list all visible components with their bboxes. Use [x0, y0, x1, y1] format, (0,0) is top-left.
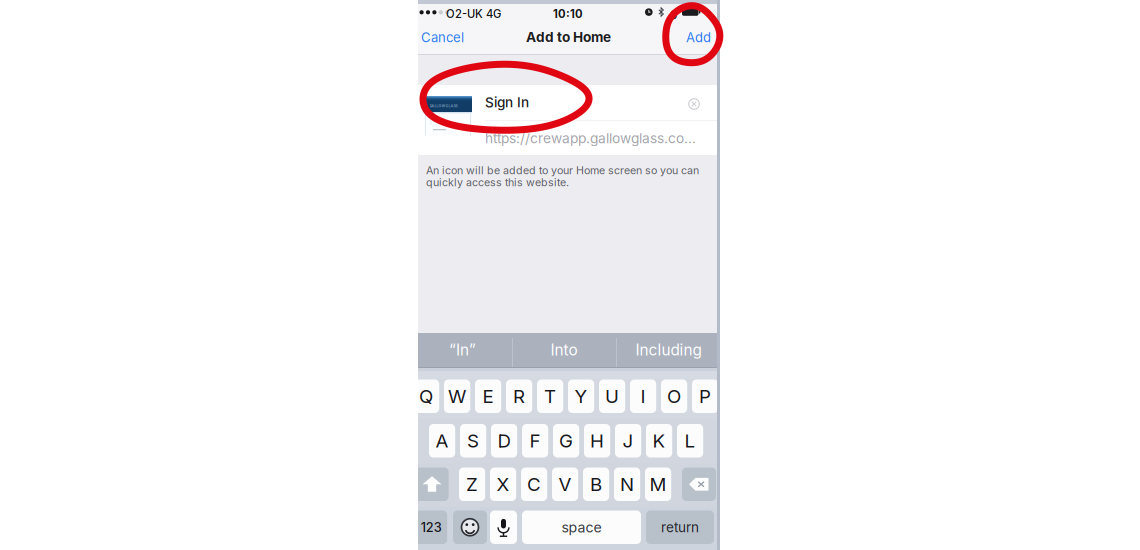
button[interactable]: Add — [669, 20, 720, 55]
staticText: Z — [466, 473, 478, 496]
button[interactable]: G — [553, 424, 579, 457]
button[interactable]: C — [521, 467, 547, 501]
button[interactable]: Into — [517, 333, 611, 367]
staticText: GALLOWGLASS — [429, 104, 457, 108]
staticText: Into — [550, 341, 577, 359]
staticText: “In” — [449, 341, 476, 359]
button[interactable]: Q — [413, 379, 439, 413]
button[interactable]: V — [552, 467, 578, 501]
staticText: G — [559, 429, 573, 452]
staticText: 10:10 — [553, 7, 583, 21]
staticText: C — [527, 473, 541, 496]
staticText: M — [650, 473, 667, 496]
staticText: J — [623, 429, 634, 452]
staticText: 123 — [421, 519, 442, 535]
button[interactable]: I — [630, 379, 656, 413]
staticText: L — [685, 429, 696, 452]
staticText: I — [641, 385, 646, 408]
staticText: Add — [686, 30, 711, 45]
button[interactable]: R — [506, 379, 532, 413]
button[interactable]: S — [460, 424, 486, 457]
staticText: space — [561, 519, 601, 536]
staticText: https://crewapp.gallowglass.co… — [485, 130, 696, 147]
staticText: Sign In — [485, 94, 529, 110]
staticText: D — [498, 429, 511, 452]
button[interactable]: space — [522, 510, 641, 544]
staticText: E — [483, 385, 494, 408]
button[interactable]: Emoji — [453, 510, 487, 544]
staticText: F — [530, 429, 541, 452]
staticText: 4G — [486, 7, 501, 21]
staticText: Including — [635, 341, 701, 359]
staticText: U — [605, 385, 619, 408]
button[interactable]: J — [615, 424, 641, 457]
staticText: A — [436, 429, 449, 452]
button[interactable]: “In” — [415, 333, 509, 367]
staticText: An icon will be added to your Home scree… — [426, 164, 699, 177]
button[interactable]: Shift — [415, 467, 449, 501]
button[interactable]: P — [692, 379, 718, 413]
staticText: P — [699, 385, 711, 408]
button[interactable]: T — [537, 379, 563, 413]
staticText: B — [590, 473, 602, 496]
button[interactable]: Z — [459, 467, 485, 501]
button[interactable]: Including — [621, 333, 715, 367]
button[interactable]: Dictate — [490, 510, 517, 544]
button[interactable]: W — [444, 379, 470, 413]
staticText: Y — [575, 385, 588, 408]
staticText: O — [667, 385, 681, 408]
staticText: Add to Home — [526, 29, 611, 45]
button[interactable]: return — [646, 510, 714, 544]
staticText: K — [653, 429, 666, 452]
button[interactable]: B — [583, 467, 609, 501]
staticText: quickly access this website. — [426, 176, 569, 189]
staticText: H — [590, 429, 604, 452]
staticText: Cancel — [421, 30, 464, 45]
button[interactable]: Delete — [682, 467, 716, 501]
staticText: R — [513, 385, 525, 408]
button[interactable]: N — [614, 467, 640, 501]
staticText: O2-UK — [446, 7, 483, 21]
staticText: X — [497, 473, 510, 496]
button[interactable]: O — [661, 379, 687, 413]
button[interactable]: L — [677, 424, 703, 457]
staticText: T — [544, 385, 556, 408]
button[interactable]: F — [522, 424, 548, 457]
button[interactable]: E — [475, 379, 501, 413]
button[interactable]: X — [490, 467, 516, 501]
staticText: return — [661, 519, 699, 535]
button[interactable]: 123 — [415, 510, 447, 544]
button[interactable]: Y — [568, 379, 594, 413]
button[interactable]: U — [599, 379, 625, 413]
button[interactable]: Clear text — [681, 91, 707, 117]
button[interactable]: H — [584, 424, 610, 457]
button[interactable]: M — [645, 467, 671, 501]
button[interactable]: K — [646, 424, 672, 457]
staticText: 9 — [670, 8, 678, 22]
staticText: S — [467, 429, 479, 452]
button[interactable]: A — [429, 424, 455, 457]
staticText: V — [559, 473, 572, 496]
button[interactable]: Cancel — [418, 20, 477, 55]
staticText: N — [620, 473, 634, 496]
staticText: Q — [419, 385, 433, 408]
button[interactable]: D — [491, 424, 517, 457]
staticText: W — [448, 385, 466, 408]
